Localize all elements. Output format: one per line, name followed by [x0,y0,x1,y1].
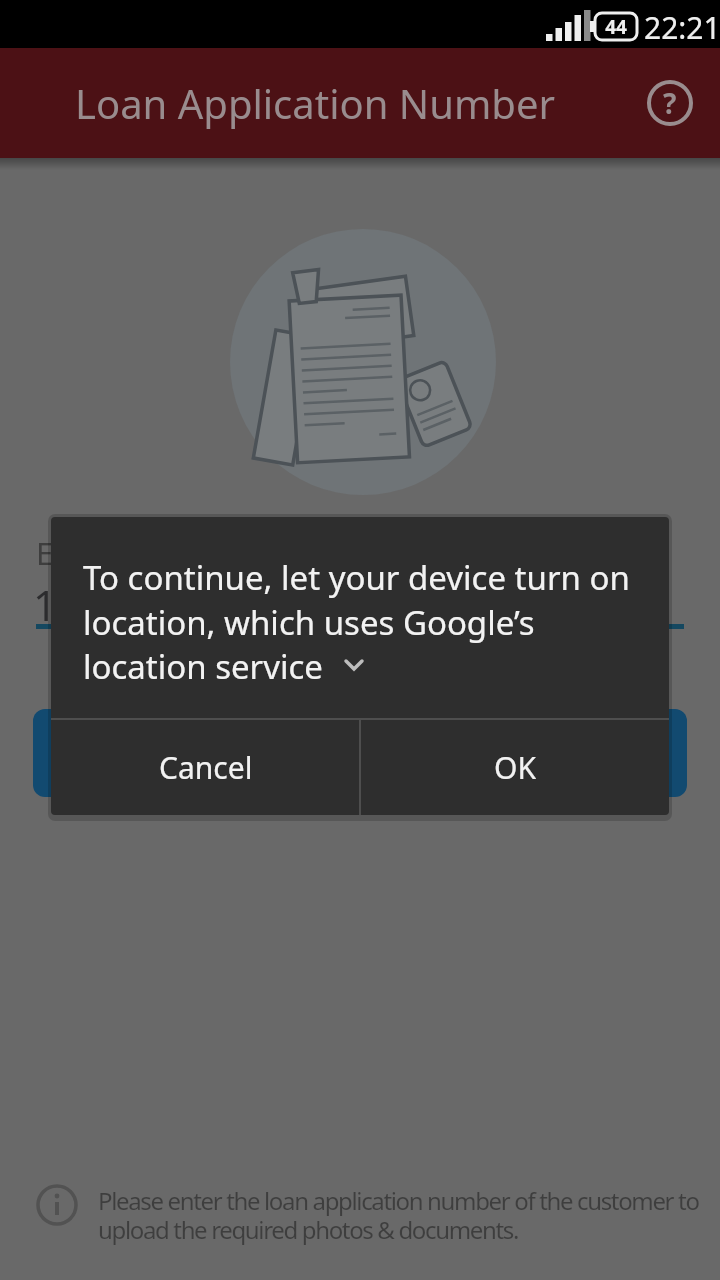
button[interactable]: OK [360,720,669,815]
staticText: ? [663,84,677,122]
staticText: 44 [596,14,636,40]
staticText: Loan Application Number [75,76,556,130]
staticText: OK [494,747,536,788]
staticText: To continue, let your device turn on loc… [83,555,630,688]
button[interactable]: Cancel [51,720,360,815]
button[interactable] [33,709,687,797]
staticText: Enter Loan Application Number [36,532,494,574]
button[interactable] [36,1184,78,1226]
staticText: Please enter the loan application number… [98,1184,699,1246]
staticText: 22:21 [644,7,720,48]
staticText: Cancel [159,747,253,788]
button[interactable]: ? [646,79,694,127]
staticText: 1 [33,576,58,633]
